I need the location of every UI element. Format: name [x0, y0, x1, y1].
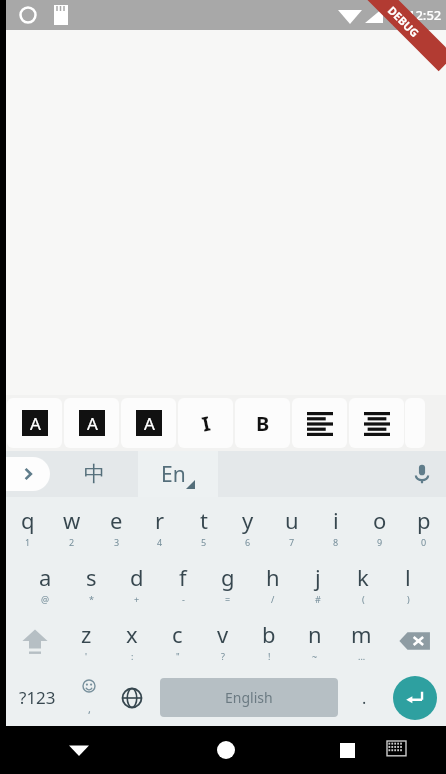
staticText: A [87, 412, 98, 435]
button[interactable]: Format option [235, 398, 290, 448]
button[interactable]: s [68, 555, 114, 612]
button[interactable]: q [6, 497, 50, 555]
staticText: c [172, 619, 183, 649]
staticText: - [182, 593, 185, 605]
button[interactable]: p [402, 497, 446, 555]
staticText: = [225, 593, 231, 605]
staticText: p [417, 505, 431, 535]
staticText: 中 [84, 461, 105, 487]
staticText: 9 [377, 536, 383, 548]
staticText: 4 [157, 536, 163, 548]
button[interactable]: Expand toolbar [6, 457, 50, 491]
button[interactable]: i [314, 497, 358, 555]
staticText: 8 [333, 536, 339, 548]
staticText: ?123 [19, 686, 56, 709]
staticText: b [262, 619, 276, 649]
staticText: q [21, 505, 35, 535]
button[interactable]: d [114, 555, 160, 612]
button[interactable]: z [64, 612, 109, 669]
staticText: ! [268, 650, 271, 662]
staticText: , [88, 701, 91, 716]
staticText: ... [358, 650, 366, 662]
button[interactable]: g [205, 555, 250, 612]
button[interactable]: ?123 [6, 669, 68, 726]
staticText: r [155, 505, 165, 535]
staticText: 0 [421, 536, 427, 548]
button[interactable]: j [295, 555, 340, 612]
staticText: s [86, 562, 97, 592]
staticText: o [373, 505, 387, 535]
staticText: # [315, 593, 321, 605]
button[interactable]: Shift [6, 612, 64, 669]
button[interactable]: h [250, 555, 295, 612]
button[interactable]: m [338, 612, 384, 669]
staticText: d [130, 562, 144, 592]
button[interactable]: Backspace [384, 612, 446, 669]
button[interactable]: b [246, 612, 292, 669]
button[interactable]: l [385, 555, 430, 612]
button[interactable]: c [154, 612, 200, 669]
button[interactable]: n [292, 612, 338, 669]
button[interactable]: v [200, 612, 246, 669]
staticText: a [39, 562, 52, 592]
button[interactable]: x [109, 612, 154, 669]
staticText: y [242, 505, 254, 535]
button[interactable]: En [138, 451, 218, 497]
button[interactable]: Format option [292, 398, 347, 448]
button[interactable]: Switch language [110, 669, 154, 726]
button[interactable]: . [344, 669, 384, 726]
button[interactable]: Enter [393, 676, 437, 720]
staticText: 5 [201, 536, 207, 548]
staticText: l [405, 562, 411, 592]
staticText: A [144, 412, 155, 435]
staticText: . [362, 687, 367, 709]
button[interactable]: u [270, 497, 314, 555]
button[interactable]: Emoji [68, 669, 110, 726]
button[interactable]: English [160, 678, 338, 717]
staticText: w [63, 505, 81, 535]
button[interactable]: t [182, 497, 226, 555]
staticText: B [256, 410, 270, 436]
button[interactable]: Format option [349, 398, 404, 448]
staticText: g [221, 562, 235, 592]
staticText: v [217, 619, 229, 649]
button[interactable]: Format option [7, 398, 62, 448]
staticText: 1 [25, 536, 31, 548]
button[interactable]: Hide keyboard [6, 726, 152, 774]
button[interactable]: k [340, 555, 385, 612]
staticText: u [285, 505, 299, 535]
button[interactable]: w [50, 497, 94, 555]
button[interactable]: Home [152, 726, 299, 774]
staticText: En [161, 460, 186, 489]
staticText: A [30, 412, 41, 435]
button[interactable]: a [22, 555, 68, 612]
staticText: DEBUG [385, 3, 422, 40]
staticText: English [225, 688, 273, 707]
button[interactable]: Voice input [398, 451, 446, 497]
staticText: : [131, 650, 134, 662]
staticText: + [134, 593, 140, 605]
button[interactable]: f [160, 555, 205, 612]
button[interactable]: y [226, 497, 270, 555]
staticText: k [357, 562, 369, 592]
staticText: e [110, 505, 123, 535]
staticText: 3 [114, 536, 120, 548]
button[interactable]: o [358, 497, 402, 555]
staticText: ? [221, 650, 225, 662]
staticText: i [333, 505, 339, 535]
button[interactable]: 中 [50, 451, 138, 497]
button[interactable]: Format option [121, 398, 176, 448]
staticText: * [89, 593, 94, 605]
button[interactable]: Format option [64, 398, 119, 448]
button[interactable]: Recent apps [299, 726, 446, 774]
button[interactable]: r [138, 497, 182, 555]
button[interactable]: Format option [178, 398, 233, 448]
staticText: n [308, 619, 322, 649]
staticText: / [271, 593, 275, 605]
staticText: 6 [245, 536, 251, 548]
staticText: z [81, 619, 92, 649]
staticText: h [266, 562, 280, 592]
button[interactable]: e [94, 497, 138, 555]
